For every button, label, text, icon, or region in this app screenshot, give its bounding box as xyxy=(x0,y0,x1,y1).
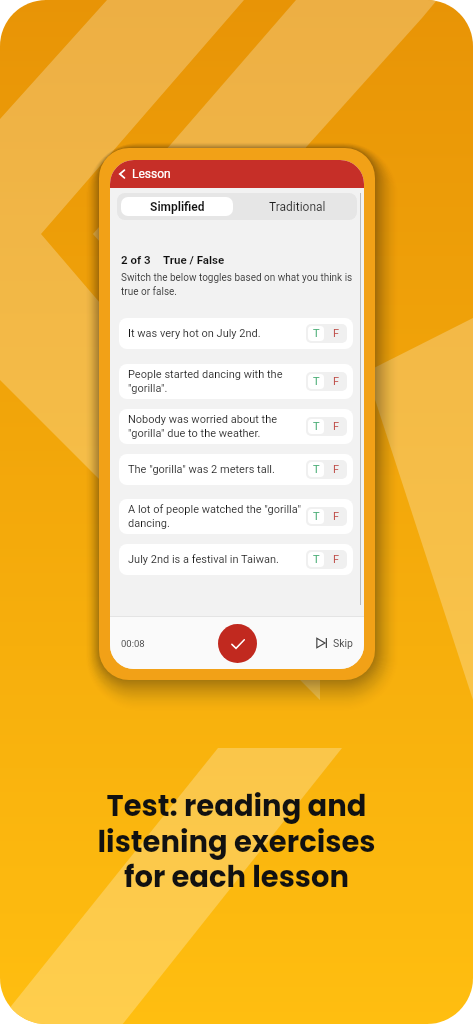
staticText: Switch the below toggles based on what y… xyxy=(121,272,362,297)
staticText: Test: reading and listening exercises fo… xyxy=(20,786,453,897)
button[interactable]: F xyxy=(326,507,347,526)
button[interactable]: F xyxy=(326,550,347,569)
staticText: F xyxy=(333,420,340,433)
button[interactable]: T xyxy=(308,552,324,567)
staticText: Traditional xyxy=(269,200,326,214)
staticText: The "gorilla" was 2 meters tall. xyxy=(128,463,302,476)
staticText: Skip xyxy=(333,637,354,649)
staticText: July 2nd is a festival in Taiwan. xyxy=(128,553,302,566)
button[interactable]: It was very hot on July 2nd. xyxy=(119,318,353,349)
staticText: Simplified xyxy=(150,200,205,214)
button[interactable]: F xyxy=(326,417,347,436)
staticText: People started dancing with the "gorilla… xyxy=(128,368,302,395)
staticText: F xyxy=(333,375,340,388)
button[interactable]: Nobody was worried about the "gorilla" d… xyxy=(119,409,353,444)
button[interactable]: Skip xyxy=(316,636,354,650)
staticText: F xyxy=(333,553,340,566)
button[interactable]: F xyxy=(326,324,347,343)
staticText: True / False xyxy=(163,253,225,266)
button[interactable]: F xyxy=(326,460,347,479)
staticText: T xyxy=(313,510,320,523)
staticText: F xyxy=(333,463,340,476)
button[interactable]: F xyxy=(326,372,347,391)
staticText: T xyxy=(313,327,320,340)
button[interactable]: The "gorilla" was 2 meters tall. xyxy=(119,454,353,485)
button[interactable]: Traditional xyxy=(237,193,357,220)
staticText: T xyxy=(313,375,320,388)
staticText: T xyxy=(313,420,320,433)
button[interactable]: Confirm xyxy=(218,624,257,663)
button[interactable]: A lot of people watched the "gorilla" da… xyxy=(119,499,353,534)
other: Back xyxy=(116,168,128,180)
staticText: It was very hot on July 2nd. xyxy=(128,327,302,340)
staticText: 2 of 3 xyxy=(121,253,151,266)
staticText: Nobody was worried about the "gorilla" d… xyxy=(128,413,302,440)
button[interactable]: July 2nd is a festival in Taiwan. xyxy=(119,544,353,575)
button[interactable]: T xyxy=(308,462,324,477)
button[interactable]: Simplified xyxy=(121,197,233,216)
button[interactable]: T xyxy=(308,509,324,524)
staticText: F xyxy=(333,510,340,523)
staticText: T xyxy=(313,463,320,476)
button[interactable]: T xyxy=(308,419,324,434)
button[interactable]: T xyxy=(308,374,324,389)
staticText: 00:08 xyxy=(121,638,145,649)
staticText: Lesson xyxy=(132,167,171,181)
staticText: F xyxy=(333,327,340,340)
button[interactable]: T xyxy=(308,326,324,341)
staticText: T xyxy=(313,553,320,566)
button[interactable]: Back xyxy=(110,160,364,188)
button[interactable]: People started dancing with the "gorilla… xyxy=(119,364,353,399)
staticText: A lot of people watched the "gorilla" da… xyxy=(128,503,302,530)
